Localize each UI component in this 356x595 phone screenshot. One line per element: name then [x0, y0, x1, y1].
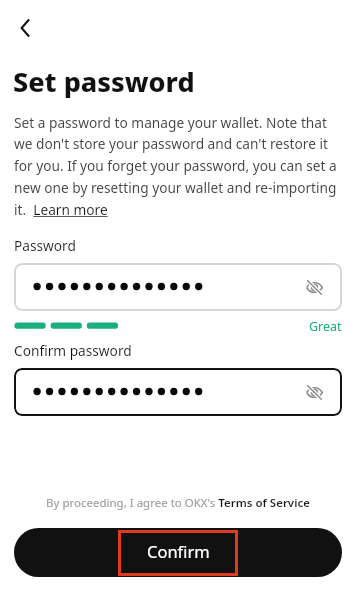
staticText: By proceeding, I agree to OKX's Terms of… — [14, 495, 342, 511]
button[interactable]: Show password — [14, 368, 342, 416]
button[interactable]: Show password — [302, 275, 326, 299]
button[interactable]: Show password — [14, 263, 342, 311]
staticText: Great — [309, 318, 342, 335]
staticText: Confirm password — [14, 341, 132, 360]
button[interactable]: Back — [6, 9, 44, 47]
staticText: Password — [14, 236, 76, 255]
button[interactable]: Show password — [302, 380, 326, 404]
staticText: Set password — [13, 63, 195, 100]
staticText: Set a password to manage your wallet. No… — [14, 113, 342, 219]
button[interactable]: Confirm — [14, 528, 342, 577]
staticText: Confirm — [147, 540, 210, 562]
